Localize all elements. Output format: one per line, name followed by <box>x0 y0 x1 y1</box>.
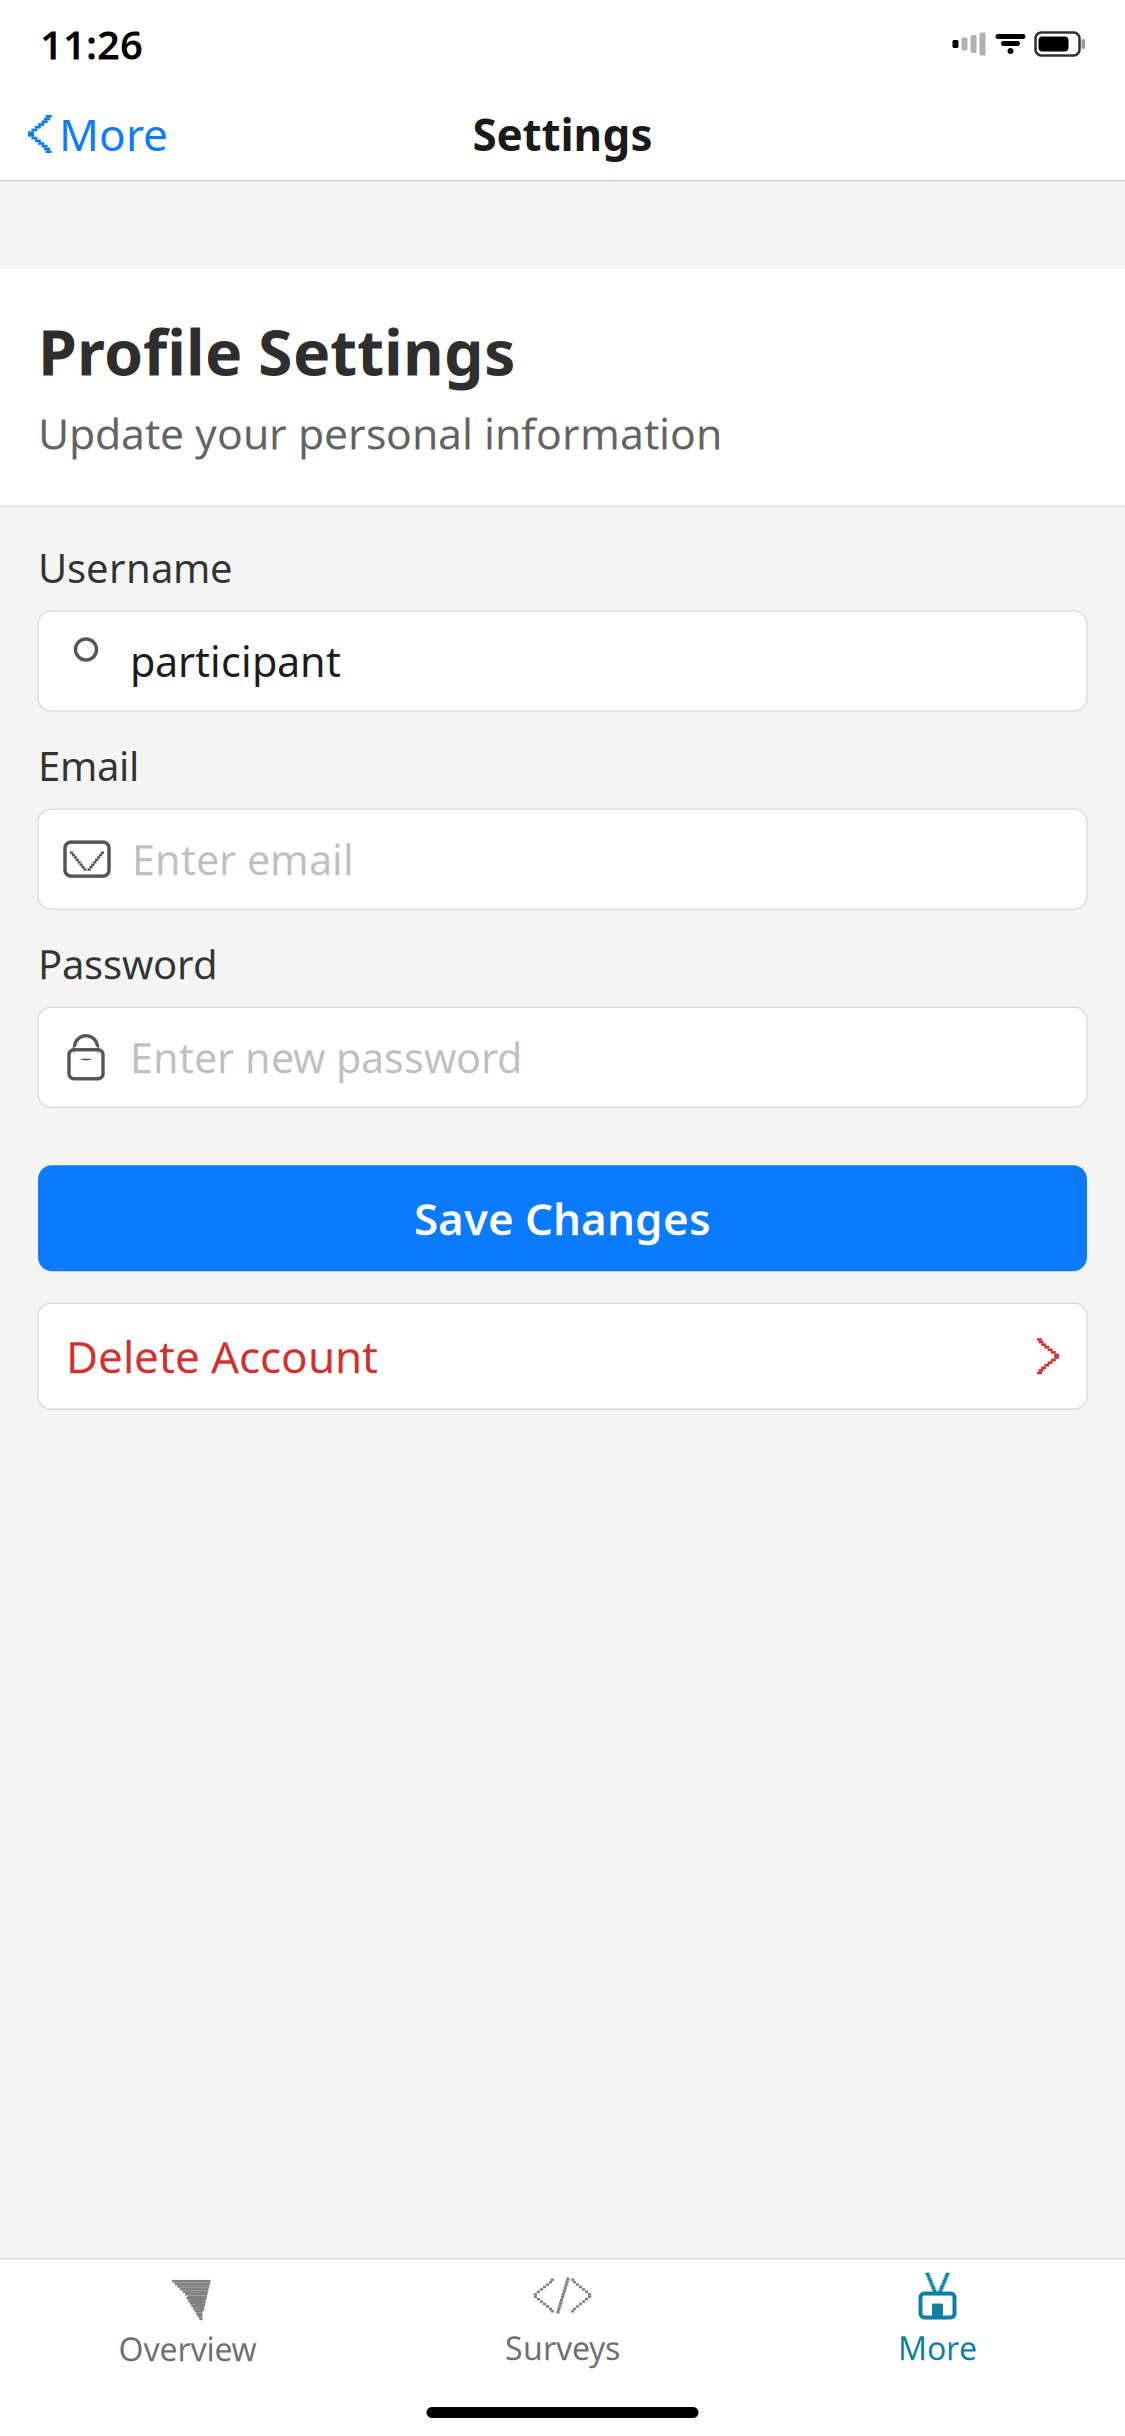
staticText: More <box>59 105 168 163</box>
button[interactable]: Delete Account <box>38 1303 1087 1409</box>
staticText: 11:26 <box>40 17 143 70</box>
staticText: Surveys <box>505 2326 620 2369</box>
staticText: Overview <box>118 2327 256 2370</box>
button[interactable]: Enter email <box>38 809 1087 909</box>
staticText: Email <box>38 739 139 792</box>
button[interactable]: More <box>22 95 174 173</box>
button[interactable]: Save Changes <box>38 1165 1087 1271</box>
staticText: Password <box>38 937 218 990</box>
staticText: Delete Account <box>66 1327 378 1385</box>
button[interactable]: Surveys <box>375 2260 750 2377</box>
staticText: Username <box>38 541 233 594</box>
staticText: Update your personal information <box>38 405 722 461</box>
button[interactable]: participant <box>38 611 1087 711</box>
button[interactable]: Enter new password <box>38 1007 1087 1107</box>
staticText: Profile Settings <box>38 309 515 393</box>
staticText: Save Changes <box>414 1189 711 1247</box>
staticText: participant <box>130 634 341 688</box>
staticText: More <box>898 2326 977 2369</box>
staticText: Settings <box>472 105 652 163</box>
staticText: Enter new password <box>130 1030 522 1085</box>
staticText: Enter email <box>132 832 354 887</box>
button[interactable]: Overview <box>0 2259 375 2378</box>
button[interactable]: More <box>750 2260 1125 2377</box>
